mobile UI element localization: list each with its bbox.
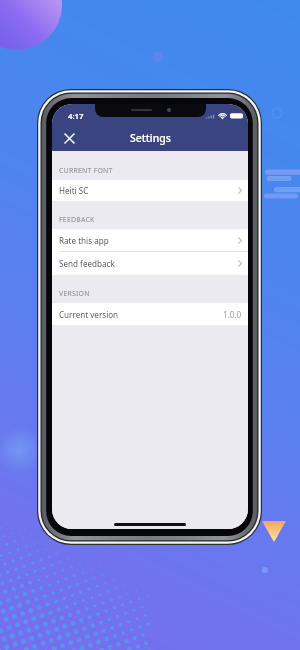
- staticText: Rate this app: [59, 235, 109, 246]
- staticText: 1.0.0: [223, 309, 242, 320]
- staticText: Send feedback: [59, 258, 115, 269]
- button[interactable]: Heiti SC: [52, 180, 248, 201]
- staticText: Current version: [59, 309, 119, 320]
- button[interactable]: Send feedback: [52, 252, 248, 275]
- staticText: Heiti SC: [59, 185, 89, 196]
- staticText: 4:17: [68, 111, 84, 122]
- staticText: Settings: [130, 131, 171, 145]
- staticText: CURRENT FONT: [59, 166, 113, 175]
- button[interactable]: Current version: [52, 303, 248, 325]
- staticText: FEEDBACK: [59, 215, 95, 224]
- staticText: VERSION: [59, 289, 90, 298]
- button[interactable]: Rate this app: [52, 229, 248, 251]
- button[interactable]: Close: [56, 125, 82, 151]
